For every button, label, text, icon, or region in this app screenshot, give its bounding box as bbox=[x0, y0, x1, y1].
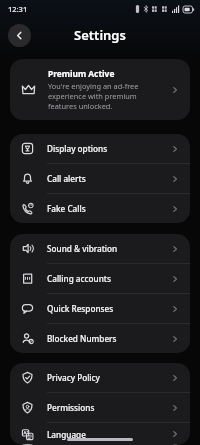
staticText: Call alerts bbox=[47, 173, 170, 184]
button[interactable]: Back bbox=[8, 24, 31, 47]
staticText: Language bbox=[47, 429, 170, 440]
staticText: Display options bbox=[47, 143, 170, 154]
button[interactable]: Sound & vibration bbox=[10, 234, 190, 263]
button[interactable]: Display options bbox=[10, 134, 190, 163]
staticText: Quick Responses bbox=[47, 303, 170, 314]
staticText: You're enjoying an ad-free experience wi… bbox=[48, 81, 164, 111]
button[interactable]: Privacy Policy bbox=[10, 363, 190, 392]
staticText: Sound & vibration bbox=[47, 243, 170, 254]
button[interactable]: Call alerts bbox=[10, 164, 190, 193]
staticText: Premium Active bbox=[48, 68, 115, 79]
staticText: Fake Calls bbox=[47, 203, 170, 214]
staticText: Permissions bbox=[47, 402, 170, 413]
button[interactable]: Blocked Numbers bbox=[10, 324, 190, 353]
staticText: Privacy Policy bbox=[47, 372, 170, 383]
button[interactable]: Quick Responses bbox=[10, 294, 190, 323]
button[interactable]: Language bbox=[10, 423, 190, 445]
staticText: Blocked Numbers bbox=[47, 333, 170, 344]
staticText: Calling accounts bbox=[47, 273, 170, 284]
button[interactable]: Permissions bbox=[10, 393, 190, 422]
button[interactable]: Fake Calls bbox=[10, 194, 190, 223]
staticText: Settings bbox=[74, 26, 126, 44]
staticText: 12:31 bbox=[8, 4, 28, 14]
button[interactable]: Calling accounts bbox=[10, 264, 190, 293]
button[interactable]: Premium Active bbox=[10, 59, 190, 120]
